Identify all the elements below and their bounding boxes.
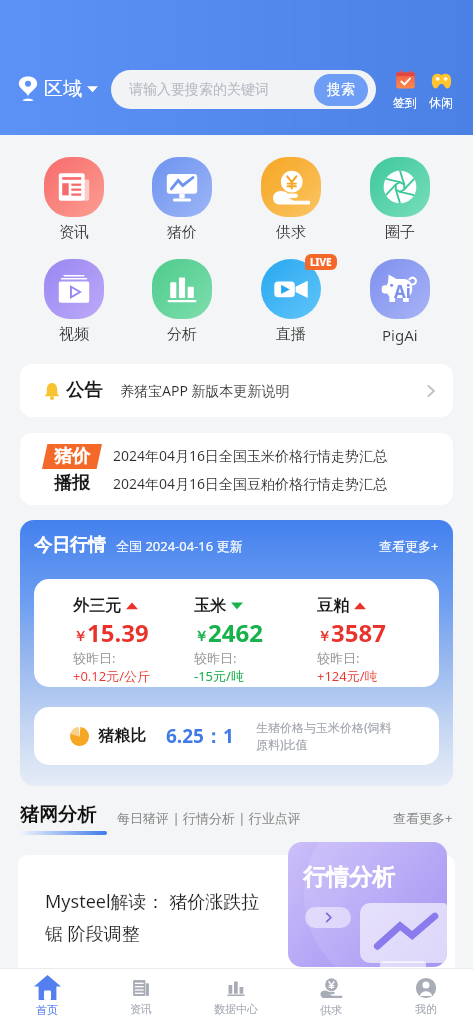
staticText: 休闲 [429,95,453,110]
staticText: 首页 [36,1003,58,1017]
staticText: 较昨日: [194,649,237,667]
button[interactable]: 公告 [20,364,453,417]
button[interactable]: 资讯 [94,968,188,1024]
staticText: 视频 [59,325,89,344]
button[interactable]: 猪粮比 [34,707,439,765]
staticText: 外三元 [73,596,121,616]
staticText: 豆粕 [317,596,349,616]
staticText: 猪粮比 [98,726,146,746]
button[interactable]: 首页 [0,968,94,1024]
button[interactable]: 猪价 [20,433,453,505]
staticText: 全国 2024-04-16 更新 [116,537,243,555]
staticText: Mysteel解读： 猪价涨跌拉锯 阶段调整 [45,889,261,945]
staticText: 圈子 [385,223,415,242]
button[interactable]: 猪价 [128,157,236,242]
staticText: 区域 [44,77,82,101]
staticText: +0.12元/公斤 [73,667,151,685]
staticText: 签到 [393,95,417,110]
staticText: 行情分析 [303,863,395,892]
staticText: ￥ [317,628,331,646]
staticText: 资讯 [130,1002,152,1016]
staticText: 直播 [276,325,306,344]
button[interactable]: 搜索 [314,74,368,106]
staticText: 请输入要搜索的关键词 [129,81,269,99]
staticText: 查看更多+ [393,809,453,827]
staticText: 6.25：1 [166,723,234,749]
staticText: 较昨日: [73,649,116,667]
button[interactable]: 查看更多+ [393,809,453,835]
staticText: Ai [394,280,411,303]
staticText: 2024年04月16日全国玉米价格行情走势汇总 [113,446,388,465]
staticText: ￥ [73,628,87,646]
staticText: 数据中心 [214,1002,258,1016]
staticText: 搜索 [327,81,355,99]
staticText: 2024年04月16日全国豆粕价格行情走势汇总 [113,474,388,493]
staticText: 供求 [320,1003,342,1017]
staticText: 15.39 [87,616,149,649]
staticText: 每日猪评 | 行情分析 | 行业点评 [117,809,301,827]
staticText: 资讯 [59,223,89,242]
staticText: 今日行情 [34,534,106,557]
staticText: 查看更多+ [379,537,439,555]
staticText: 养猪宝APP 新版本更新说明 [120,381,290,400]
button[interactable]: 行情分析 [288,842,447,967]
staticText: 公告 [66,379,102,402]
staticText: 播报 [54,472,90,495]
staticText: 猪价 [54,445,90,468]
button[interactable]: 签到 [386,70,424,110]
staticText: 玉米 [194,596,226,616]
button[interactable]: 圈子 [345,157,454,242]
button[interactable]: 请输入要搜索的关键词 [111,70,376,109]
staticText: 3587 [331,616,386,649]
button[interactable]: Mysteel解读： 猪价涨跌拉锯 阶段调整 [18,855,455,975]
staticText: 较昨日: [317,649,360,667]
button[interactable]: 供求 [236,157,345,242]
staticText: 分析 [167,325,197,344]
staticText: LIVE [310,255,332,269]
button[interactable]: 数据中心 [188,968,283,1024]
button[interactable]: 休闲 [422,70,460,110]
button[interactable]: 分析 [128,259,236,344]
staticText: 生猪价格与玉米价格(饲料原料)比值 [256,719,396,753]
button[interactable]: Ai [345,259,454,345]
staticText: 猪网分析 [20,803,96,827]
button[interactable]: LIVE [236,259,345,344]
button[interactable]: 视频 [20,259,128,344]
staticText: +124元/吨 [317,667,378,685]
button[interactable]: 区域 [18,76,98,102]
staticText: 供求 [276,223,306,242]
staticText: 我的 [415,1002,437,1016]
staticText: -15元/吨 [194,667,244,685]
button[interactable]: 供求 [283,968,378,1024]
button[interactable]: 查看更多+ [379,537,439,557]
button[interactable]: 资讯 [20,157,128,242]
staticText: 猪价 [167,223,197,242]
button[interactable]: 我的 [378,968,473,1024]
staticText: ￥ [194,628,208,646]
staticText: PigAi [382,325,418,345]
staticText: 2462 [208,616,263,649]
